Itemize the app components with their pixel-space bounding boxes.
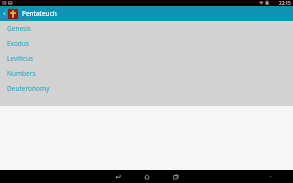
staticText: Genesis (7, 24, 31, 33)
staticText: 22:15 (279, 0, 291, 6)
staticText: Exodus (7, 39, 29, 48)
button[interactable]: Back (112, 170, 124, 183)
staticText: Numbers (7, 69, 36, 78)
button[interactable]: Exodus (0, 36, 293, 51)
button[interactable]: Numbers (0, 66, 293, 81)
button[interactable]: Leviticus (0, 51, 293, 66)
button[interactable]: Genesis (0, 21, 293, 36)
staticText: Deuteronomy (7, 84, 50, 93)
staticText: Pentateuch (22, 9, 57, 18)
button[interactable]: Deuteronomy (0, 81, 293, 96)
button[interactable]: Home (141, 170, 153, 183)
button[interactable]: Navigate up (0, 6, 8, 21)
button[interactable]: App icon (8, 9, 18, 19)
staticText: Leviticus (7, 54, 34, 63)
button[interactable]: Recent apps (170, 170, 182, 183)
